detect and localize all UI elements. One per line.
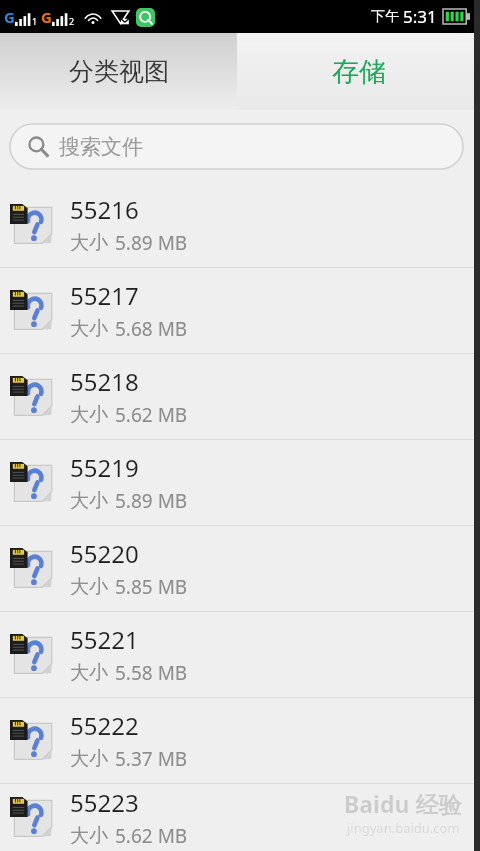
- staticText: 55222: [70, 709, 139, 742]
- staticText: 55221: [70, 623, 139, 656]
- staticText: 5:31: [403, 5, 437, 28]
- button[interactable]: 55220: [0, 526, 480, 611]
- staticText: 大小: [70, 747, 108, 771]
- button[interactable]: 55217: [0, 268, 480, 353]
- staticText: 5.62 MB: [115, 402, 188, 428]
- button[interactable]: 55218: [0, 354, 480, 439]
- staticText: 下午: [371, 8, 399, 26]
- staticText: 55217: [70, 279, 139, 312]
- staticText: 存储: [332, 55, 386, 89]
- button[interactable]: 存储: [237, 33, 480, 110]
- button[interactable]: 55219: [0, 440, 480, 525]
- staticText: 55219: [70, 451, 139, 484]
- staticText: 搜索文件: [59, 134, 143, 160]
- staticText: 5.89 MB: [115, 488, 188, 514]
- staticText: 2: [69, 15, 75, 27]
- staticText: 大小: [70, 231, 108, 255]
- staticText: 55223: [70, 786, 139, 819]
- staticText: 55216: [70, 193, 139, 226]
- staticText: 大小: [70, 489, 108, 513]
- staticText: 大小: [70, 403, 108, 427]
- button[interactable]: 分类视图: [0, 33, 237, 110]
- staticText: 5.85 MB: [115, 574, 188, 600]
- staticText: 5.62 MB: [115, 823, 188, 849]
- staticText: G: [41, 7, 52, 27]
- button[interactable]: 搜索文件: [10, 124, 463, 169]
- staticText: 分类视图: [69, 56, 169, 87]
- staticText: 55218: [70, 365, 139, 398]
- staticText: 5.68 MB: [115, 316, 188, 342]
- staticText: 大小: [70, 575, 108, 599]
- staticText: 5.89 MB: [115, 230, 188, 256]
- button[interactable]: 55223: [0, 784, 480, 851]
- button[interactable]: 55221: [0, 612, 480, 697]
- staticText: 5.37 MB: [115, 746, 188, 772]
- button[interactable]: 55216: [0, 182, 480, 267]
- staticText: 55220: [70, 537, 139, 570]
- staticText: 大小: [70, 317, 108, 341]
- staticText: jingyan.baidu.com: [347, 819, 460, 837]
- staticText: Baidu 经验: [344, 788, 462, 819]
- staticText: 大小: [70, 661, 108, 685]
- staticText: G: [4, 7, 15, 27]
- staticText: 大小: [70, 824, 108, 848]
- staticText: 1: [32, 15, 38, 27]
- staticText: 5.58 MB: [115, 660, 188, 686]
- button[interactable]: 55222: [0, 698, 480, 783]
